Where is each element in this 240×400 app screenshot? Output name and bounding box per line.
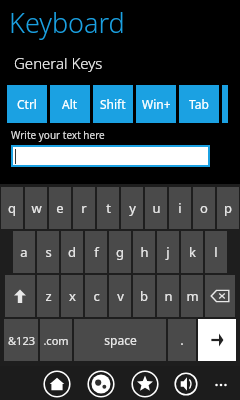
staticText: e [56, 199, 64, 217]
button[interactable]: Tab [179, 85, 219, 123]
button[interactable]: Ctrl [7, 85, 47, 123]
staticText: space [104, 332, 137, 348]
button[interactable]: i [169, 187, 191, 229]
staticText: Ctrl [17, 96, 37, 112]
button[interactable]: l [205, 231, 227, 273]
staticText: Keyboard [9, 4, 125, 41]
staticText: . [180, 331, 184, 349]
staticText: Alt [62, 96, 78, 112]
button[interactable]: Home [42, 369, 72, 399]
button[interactable]: c [85, 275, 107, 317]
button[interactable]: . [168, 319, 196, 361]
button[interactable]: Favorites [130, 369, 160, 399]
button[interactable]: space [74, 319, 166, 361]
button[interactable]: y [121, 187, 143, 229]
button[interactable] [198, 319, 236, 361]
button[interactable]: v [109, 275, 131, 317]
staticText: g [116, 243, 124, 261]
staticText: l [214, 243, 218, 261]
button[interactable]: Sound [174, 369, 198, 399]
staticText: y [129, 199, 136, 217]
staticText: k [189, 243, 196, 261]
staticText: m [186, 287, 199, 305]
staticText: Tab [189, 96, 209, 112]
staticText: v [117, 287, 124, 305]
staticText: j [166, 243, 170, 261]
staticText: o [200, 199, 208, 217]
button[interactable]: t [97, 187, 119, 229]
button[interactable]: d [61, 231, 83, 273]
staticText: q [8, 199, 16, 217]
staticText: Win+ [142, 96, 171, 112]
button[interactable]: e [49, 187, 71, 229]
button[interactable]: o [193, 187, 215, 229]
staticText: x [69, 287, 76, 305]
staticText: c [93, 287, 100, 305]
staticText: &123 [8, 333, 35, 348]
button[interactable]: &123 [4, 319, 38, 361]
button[interactable]: k [181, 231, 203, 273]
button[interactable] [11, 145, 210, 167]
button[interactable]: j [157, 231, 179, 273]
button[interactable]: p [217, 187, 239, 229]
button[interactable]: Win+ [136, 85, 176, 123]
staticText: n [164, 287, 173, 305]
button[interactable] [5, 275, 35, 317]
staticText: s [45, 243, 52, 261]
staticText: w [31, 199, 42, 217]
button[interactable]: More options [210, 374, 232, 396]
button[interactable]: m [181, 275, 203, 317]
staticText: u [152, 199, 161, 217]
button[interactable]: Language [86, 369, 116, 399]
button[interactable]: h [133, 231, 155, 273]
staticText: p [224, 199, 232, 217]
button[interactable] [205, 275, 235, 317]
button[interactable]: Shift [93, 85, 133, 123]
button[interactable]: r [73, 187, 95, 229]
button[interactable]: .com [40, 319, 72, 361]
button[interactable]: u [145, 187, 167, 229]
staticText: Write your text here [11, 128, 105, 142]
button[interactable]: x [61, 275, 83, 317]
button[interactable]: z [37, 275, 59, 317]
staticText: .com [43, 333, 69, 348]
button[interactable]: a [13, 231, 35, 273]
staticText: b [140, 287, 148, 305]
button[interactable]: f [85, 231, 107, 273]
staticText: r [81, 199, 87, 217]
staticText: General Keys [14, 53, 103, 73]
button[interactable]: w [25, 187, 47, 229]
staticText: i [178, 199, 182, 217]
staticText: t [106, 199, 111, 217]
staticText: Shift [100, 96, 126, 112]
staticText: h [140, 243, 149, 261]
staticText: a [20, 243, 28, 261]
button[interactable]: q [1, 187, 23, 229]
button[interactable]: g [109, 231, 131, 273]
staticText: z [45, 287, 52, 305]
staticText: d [68, 243, 76, 261]
button[interactable]: s [37, 231, 59, 273]
staticText: f [94, 243, 99, 261]
button[interactable]: Alt [50, 85, 90, 123]
button[interactable]: b [133, 275, 155, 317]
button[interactable]: n [157, 275, 179, 317]
